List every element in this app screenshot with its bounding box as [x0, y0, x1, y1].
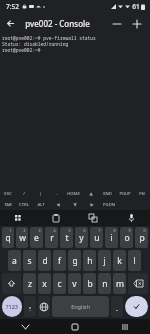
staticText: h	[87, 255, 93, 267]
staticText: ESC	[4, 191, 12, 197]
button[interactable]: i	[105, 227, 118, 248]
staticText: -	[56, 191, 58, 197]
button[interactable]: d	[38, 250, 51, 271]
button[interactable]: z	[23, 273, 36, 294]
staticText: Status: disabled/running	[2, 41, 69, 47]
staticText: r	[50, 232, 54, 244]
staticText: m	[116, 278, 124, 290]
button[interactable]: k	[113, 250, 126, 271]
staticText: .	[116, 304, 118, 314]
staticText: z	[28, 278, 32, 290]
staticText: English	[71, 303, 90, 310]
staticText: root@pve002:~# pve-firewall status	[2, 35, 96, 41]
staticText: HOME	[67, 191, 80, 197]
button[interactable]: q	[2, 227, 14, 248]
button[interactable]: Enter	[125, 296, 148, 317]
button[interactable]: ,	[24, 296, 36, 317]
button[interactable]: Voice input	[112, 210, 150, 226]
button[interactable]: FN	[133, 188, 150, 199]
button[interactable]: Shift	[2, 273, 21, 294]
staticText: 2	[23, 228, 26, 233]
button[interactable]: HOME	[65, 188, 82, 199]
button[interactable]: Clipboard grid	[0, 210, 37, 226]
button[interactable]: ▶	[83, 199, 100, 210]
button[interactable]: l	[128, 250, 141, 271]
staticText: FN	[139, 191, 145, 197]
staticText: /	[23, 191, 25, 197]
button[interactable]: PGDN	[100, 199, 117, 210]
button[interactable]: p	[135, 227, 148, 248]
button[interactable]: c	[53, 273, 66, 294]
button[interactable]: h	[83, 250, 96, 271]
button[interactable]: TAB	[0, 199, 16, 210]
button[interactable]: ALT	[32, 199, 49, 210]
staticText: u	[94, 232, 100, 244]
staticText: n	[102, 278, 108, 290]
staticText: e	[34, 232, 39, 244]
button[interactable]: v	[68, 273, 81, 294]
button[interactable]: Home	[50, 319, 100, 334]
staticText: f	[58, 255, 61, 267]
button[interactable]: -	[48, 188, 65, 199]
staticText: p	[139, 232, 145, 244]
button[interactable]: Zoom in	[127, 14, 147, 34]
staticText: |	[39, 191, 42, 197]
button[interactable]: b	[83, 273, 96, 294]
button[interactable]: e	[30, 227, 43, 248]
button[interactable]: |	[32, 188, 48, 199]
button[interactable]: m	[113, 273, 126, 294]
button[interactable]: CTRL	[16, 199, 32, 210]
staticText: y	[79, 232, 84, 244]
button[interactable]: Translate	[74, 210, 112, 226]
button[interactable]: END	[99, 188, 116, 199]
staticText: TAB	[4, 202, 12, 208]
button[interactable]: Back	[0, 13, 21, 34]
button[interactable]: g	[68, 250, 81, 271]
button[interactable]: o	[120, 227, 133, 248]
staticText: 1	[9, 228, 12, 233]
button[interactable]: Backspace	[128, 273, 148, 294]
staticText: v	[72, 278, 77, 290]
button[interactable]: .	[111, 296, 123, 317]
staticText: ▶	[90, 202, 94, 207]
button[interactable]: Zoom out	[107, 14, 127, 34]
button[interactable]: n	[98, 273, 111, 294]
button[interactable]: ▲	[82, 188, 99, 199]
button[interactable]: s	[23, 250, 36, 271]
button[interactable]: English	[52, 296, 109, 317]
staticText: 8	[113, 228, 116, 233]
button[interactable]: ESC	[0, 188, 16, 199]
button[interactable]: f	[53, 250, 66, 271]
button[interactable]: a	[8, 250, 21, 271]
button[interactable]: root@pve002:~# pve-firewall status	[0, 34, 150, 188]
button[interactable]: j	[98, 250, 111, 271]
staticText: 4	[53, 228, 56, 233]
button[interactable]: ◀	[49, 199, 66, 210]
button[interactable]: ▼	[66, 199, 83, 210]
button[interactable]: w	[16, 227, 28, 248]
button[interactable]: t	[60, 227, 73, 248]
staticText: ,	[29, 301, 31, 310]
staticText: t	[65, 232, 69, 244]
staticText: PGDN	[103, 202, 115, 208]
button[interactable]: r	[45, 227, 58, 248]
button[interactable]: u	[90, 227, 103, 248]
button[interactable]: PGUP	[116, 188, 133, 199]
button[interactable]: Paste	[37, 210, 74, 226]
button[interactable]: y	[75, 227, 88, 248]
staticText: 61	[132, 2, 140, 11]
staticText: CTRL	[19, 202, 29, 208]
button[interactable]: ?123	[2, 296, 22, 317]
button[interactable]: /	[16, 188, 32, 199]
staticText: 7	[98, 228, 101, 233]
button[interactable]: Recents	[100, 319, 150, 334]
staticText: PGUP	[119, 191, 131, 197]
staticText: x	[42, 278, 47, 290]
button[interactable]: Hide keyboard	[0, 319, 50, 334]
staticText: g	[72, 255, 78, 267]
staticText: .	[29, 304, 31, 313]
staticText: w	[19, 232, 26, 244]
staticText: 6	[83, 228, 86, 233]
button[interactable]: x	[38, 273, 51, 294]
button[interactable]: Change language	[38, 296, 50, 317]
